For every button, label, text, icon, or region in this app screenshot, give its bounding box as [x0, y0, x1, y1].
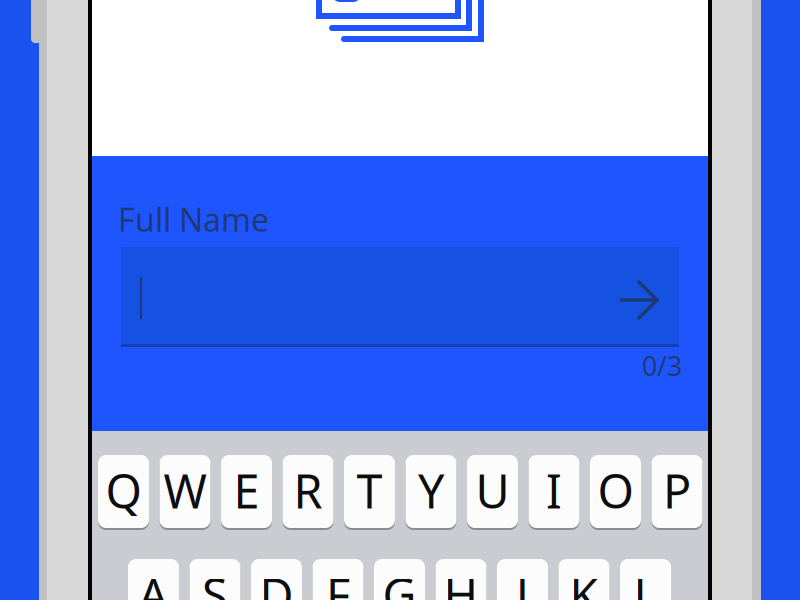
staticText: Q — [105, 459, 141, 521]
staticText: L — [633, 563, 657, 600]
button[interactable]: Q — [98, 454, 149, 529]
staticText: Full Name — [118, 198, 269, 240]
button[interactable]: Y — [405, 454, 456, 529]
staticText: J — [516, 563, 529, 600]
button[interactable]: O — [590, 454, 641, 529]
button[interactable]: W — [159, 454, 210, 529]
button[interactable]: R — [282, 454, 333, 529]
button[interactable]: D — [251, 558, 302, 600]
button[interactable]: F — [312, 558, 363, 600]
button[interactable]: H — [435, 558, 486, 600]
staticText: K — [569, 563, 598, 600]
staticText: U — [475, 459, 509, 521]
staticText: S — [202, 563, 228, 600]
button[interactable]: Full Name text field — [121, 247, 679, 344]
button[interactable]: K — [558, 558, 609, 600]
staticText: R — [293, 459, 322, 521]
staticText: 0/3 — [642, 348, 682, 383]
staticText: D — [259, 563, 293, 600]
staticText: T — [356, 459, 382, 521]
staticText: A — [138, 563, 168, 600]
staticText: Y — [418, 459, 444, 521]
button[interactable]: G — [374, 558, 425, 600]
button[interactable]: P — [651, 454, 702, 529]
staticText: I — [546, 459, 562, 521]
button[interactable]: L — [620, 558, 671, 600]
button[interactable]: A — [128, 558, 179, 600]
button[interactable]: S — [189, 558, 240, 600]
staticText: G — [382, 563, 416, 600]
staticText: O — [597, 459, 633, 521]
button[interactable]: T — [344, 454, 395, 529]
staticText: W — [163, 459, 206, 521]
button[interactable]: U — [467, 454, 518, 529]
staticText: P — [663, 459, 691, 521]
staticText: H — [443, 563, 478, 600]
staticText: F — [326, 563, 350, 600]
staticText: E — [233, 459, 259, 521]
button[interactable]: I — [528, 454, 579, 529]
button[interactable]: J — [497, 558, 548, 600]
button[interactable]: E — [221, 454, 272, 529]
